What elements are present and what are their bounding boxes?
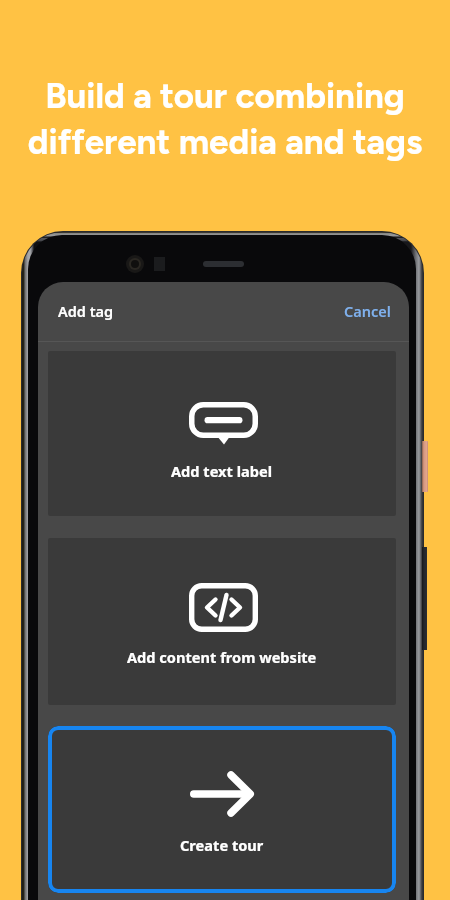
button[interactable]: Add text label: [48, 351, 396, 516]
staticText: Add tag: [58, 301, 114, 321]
button[interactable]: Create tour: [48, 726, 396, 893]
button[interactable]: Cancel: [335, 294, 399, 328]
staticText: Cancel: [344, 301, 391, 321]
button[interactable]: Add content from website: [48, 538, 396, 705]
staticText: Add content from website: [127, 647, 317, 667]
staticText: Create tour: [180, 835, 264, 855]
staticText: Build a tour combining different media a…: [0, 75, 450, 163]
staticText: Add text label: [171, 461, 273, 481]
